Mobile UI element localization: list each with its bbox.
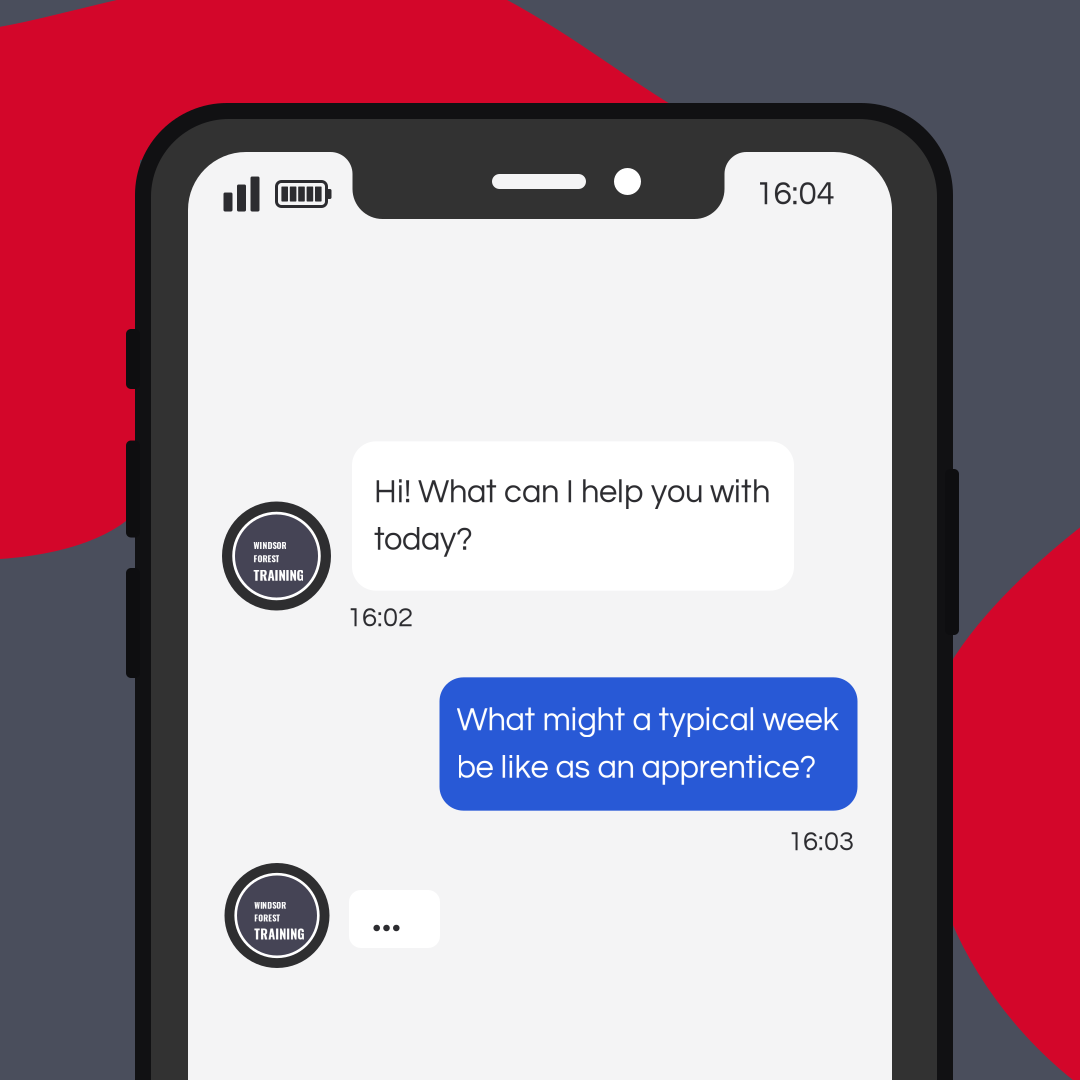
staticText: WINDSOR — [253, 539, 286, 551]
staticText: Hi! What can I help you with today? — [374, 475, 770, 557]
button[interactable]: Hi! What can I help you with today? — [352, 441, 794, 591]
button[interactable]: Windsor Forest Training — [222, 501, 331, 610]
staticText: FOREST — [254, 912, 280, 924]
button[interactable]: Windsor Forest Training — [224, 863, 329, 968]
staticText: 16:03 — [788, 828, 854, 856]
button[interactable]: What might a typical week be like as an … — [439, 677, 857, 811]
staticText: What might a typical week be like as an … — [456, 703, 838, 785]
staticText: 16:02 — [347, 604, 413, 632]
staticText: 16:04 — [755, 177, 834, 211]
staticText: TRAINING — [253, 565, 304, 585]
staticText: TRAINING — [254, 924, 304, 943]
staticText: FOREST — [253, 552, 279, 565]
staticText: WINDSOR — [254, 899, 286, 911]
button[interactable]: Typing — [349, 890, 440, 948]
